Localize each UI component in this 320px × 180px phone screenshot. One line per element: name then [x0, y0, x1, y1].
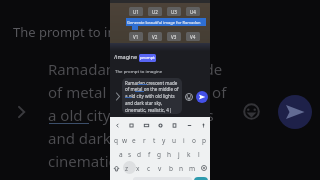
staticText: z [125, 164, 129, 173]
staticText: y [162, 136, 166, 145]
button[interactable]: Backspace [198, 161, 210, 175]
staticText: f [148, 150, 151, 159]
staticText: d [137, 150, 141, 159]
button[interactable]: x [132, 161, 143, 175]
staticText: Ramadan crescent made of metal on the mi… [125, 80, 180, 113]
button[interactable]: Back [113, 121, 121, 129]
button[interactable]: m [187, 161, 198, 175]
staticText: q [114, 136, 118, 145]
staticText: p [202, 136, 206, 145]
staticText: a old city with old lights [48, 105, 214, 125]
button[interactable]: v [154, 161, 165, 175]
staticText: a [119, 150, 123, 159]
staticText: u [172, 136, 177, 145]
staticText: v [158, 164, 162, 173]
staticText: cinematic, realistic, 4| [48, 151, 203, 171]
button[interactable]: V2 [148, 32, 162, 41]
button[interactable]: p [199, 133, 209, 147]
staticText: w [122, 136, 128, 145]
staticText: h [167, 150, 172, 159]
button[interactable]: z [122, 161, 132, 175]
staticText: U1 [133, 9, 139, 15]
staticText: Ramadan crescent made [48, 59, 223, 79]
button[interactable]: t [149, 133, 159, 147]
button[interactable]: a [116, 147, 125, 161]
staticText: j [178, 150, 180, 159]
staticText: The prompt to imagine [115, 68, 163, 74]
staticText: U4 [190, 9, 196, 15]
button[interactable]: GIF [142, 121, 150, 129]
staticText: of metal on the middle of [48, 82, 227, 102]
button[interactable]: c [143, 161, 154, 175]
staticText: c [147, 164, 151, 173]
staticText: g [157, 150, 161, 159]
button[interactable]: o [189, 133, 199, 147]
staticText: prompt [140, 55, 155, 61]
button[interactable]: Stickers [127, 121, 135, 129]
button[interactable]: i [179, 133, 189, 147]
button[interactable]: Settings [156, 121, 164, 129]
button[interactable]: Clipboard [170, 121, 178, 129]
staticText: V2 [152, 34, 158, 40]
button[interactable]: U4 [186, 7, 200, 16]
button[interactable]: More [185, 121, 193, 129]
staticText: t [153, 136, 156, 145]
button[interactable]: q [111, 133, 120, 147]
staticText: The prompt to imagine [13, 23, 154, 41]
button[interactable]: j [174, 147, 184, 161]
button[interactable]: V3 [167, 32, 181, 41]
button[interactable]: e [129, 133, 139, 147]
staticText: i [183, 136, 185, 145]
button[interactable]: g [154, 147, 164, 161]
button[interactable]: r [139, 133, 149, 147]
staticText: m [189, 164, 196, 173]
button[interactable]: U3 [167, 7, 181, 16]
button[interactable]: Shift [110, 161, 122, 175]
button[interactable]: k [184, 147, 194, 161]
staticText: k [187, 150, 191, 159]
staticText: V1 [133, 34, 139, 40]
button[interactable]: Send [196, 91, 208, 103]
staticText: b [169, 164, 173, 173]
button[interactable]: prompt [139, 54, 156, 62]
staticText: o [192, 136, 196, 145]
staticText: e [132, 136, 136, 145]
button[interactable]: y [159, 133, 169, 147]
button[interactable]: U2 [148, 7, 162, 16]
button[interactable]: s [125, 147, 134, 161]
staticText: and dark star sky, [48, 128, 172, 148]
button[interactable]: h [164, 147, 174, 161]
button[interactable]: l [194, 147, 204, 161]
staticText: U3 [171, 9, 177, 15]
button[interactable]: w [120, 133, 129, 147]
staticText: r [143, 136, 146, 145]
button[interactable]: U1 [129, 7, 143, 16]
button[interactable]: u [169, 133, 179, 147]
staticText: V4 [190, 34, 196, 40]
button[interactable]: V1 [129, 32, 143, 41]
button[interactable]: d [134, 147, 144, 161]
staticText: /imagine [114, 53, 137, 60]
staticText: V3 [171, 34, 177, 40]
button[interactable]: n [176, 161, 187, 175]
button[interactable]: Voice input [199, 121, 207, 129]
staticText: x [136, 164, 140, 173]
button[interactable]: b [165, 161, 176, 175]
staticText: Generate beautiful image for Ramadan usi… [127, 20, 207, 25]
staticText: s [128, 150, 132, 159]
button[interactable]: Enter [194, 177, 208, 180]
button[interactable]: V4 [186, 32, 200, 41]
staticText: U2 [152, 9, 158, 15]
staticText: n [179, 164, 184, 173]
staticText: l [198, 150, 200, 159]
button[interactable]: Ramadan crescent made of metal on the mi… [122, 78, 182, 114]
button[interactable]: f [144, 147, 154, 161]
other: Emoji [185, 93, 193, 101]
